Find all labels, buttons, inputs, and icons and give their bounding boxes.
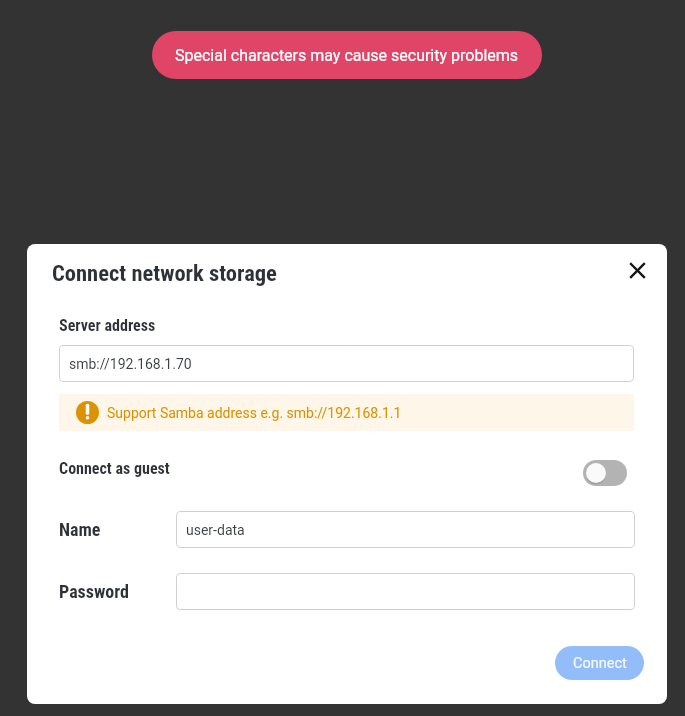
staticText: Password: [59, 581, 130, 602]
button[interactable]: Special characters may cause security pr…: [152, 31, 542, 79]
staticText: Connect as guest: [59, 459, 170, 478]
staticText: Connect: [573, 655, 627, 672]
staticText: Connect network storage: [52, 260, 277, 286]
button[interactable]: Close: [617, 250, 657, 290]
button[interactable]: Connect as guest: [583, 460, 627, 486]
staticText: Special characters may cause security pr…: [175, 46, 519, 65]
button[interactable]: Server address: [59, 345, 634, 382]
staticText: smb://192.168.1.70: [69, 356, 192, 372]
button[interactable]: Name: [176, 511, 635, 548]
staticText: Support Samba address e.g. smb://192.168…: [107, 405, 402, 421]
staticText: Server address: [59, 316, 156, 335]
staticText: Name: [59, 519, 101, 540]
button[interactable]: Connect: [555, 646, 644, 680]
staticText: user-data: [186, 522, 245, 538]
button[interactable]: Password: [176, 573, 635, 610]
